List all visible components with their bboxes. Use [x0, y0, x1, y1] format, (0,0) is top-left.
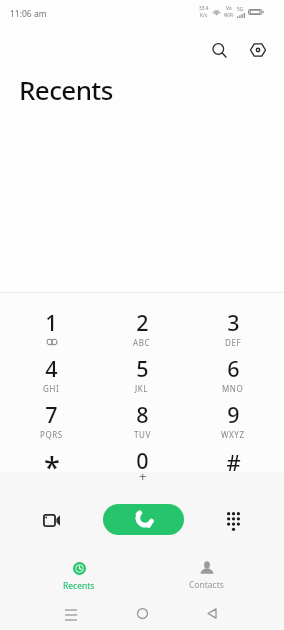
staticText: Recents [19, 72, 113, 107]
staticText: 4 [45, 354, 58, 383]
staticText: K/s [200, 12, 208, 18]
staticText: ABC [133, 337, 151, 348]
staticText: Recents [63, 580, 95, 592]
staticText: 0 [136, 446, 149, 475]
staticText: 5G [237, 6, 244, 13]
staticText: WXYZ [221, 429, 245, 440]
staticText: 11:06 am [10, 8, 47, 20]
staticText: * [44, 447, 60, 486]
button[interactable]: 4 [15, 354, 87, 400]
button[interactable]: 1 [15, 308, 87, 354]
staticText: Contacts [189, 579, 224, 591]
staticText: 7 [45, 400, 58, 429]
staticText: JKL [135, 383, 149, 394]
staticText: 5 [136, 354, 149, 383]
staticText: 1 [45, 308, 58, 337]
staticText: PQRS [40, 429, 63, 440]
button[interactable]: Call [103, 504, 184, 535]
button[interactable]: Recents [47, 562, 111, 596]
button[interactable]: Video call [33, 502, 69, 538]
button[interactable]: Contacts [174, 561, 238, 595]
staticText: TUV [134, 429, 151, 440]
staticText: 9 [227, 400, 240, 429]
staticText: 6 [227, 354, 240, 383]
staticText: GHI [43, 383, 60, 394]
button[interactable]: * [15, 446, 87, 492]
staticText: Vo [226, 5, 232, 12]
button[interactable]: 0 [106, 446, 178, 492]
staticText: 8 [136, 400, 149, 429]
button[interactable]: Recent apps [57, 600, 85, 628]
staticText: 33.4 [199, 5, 209, 12]
staticText: DEF [225, 337, 242, 348]
button[interactable]: Dialpad [215, 502, 251, 538]
staticText: WiFi [224, 12, 234, 18]
button[interactable]: 8 [106, 400, 178, 446]
button[interactable]: 7 [15, 400, 87, 446]
staticText: 2 [136, 308, 149, 337]
button[interactable]: Back [198, 599, 226, 627]
button[interactable]: 5 [106, 354, 178, 400]
button[interactable]: # [197, 446, 269, 492]
button[interactable]: Settings [243, 35, 273, 65]
staticText: + [139, 467, 147, 484]
staticText: 3 [227, 308, 240, 337]
button[interactable]: 6 [197, 354, 269, 400]
button[interactable]: 9 [197, 400, 269, 446]
staticText: MNO [222, 383, 244, 394]
button[interactable]: Home [128, 599, 156, 627]
button[interactable]: 2 [106, 308, 178, 354]
staticText: # [226, 447, 241, 477]
button[interactable]: 3 [197, 308, 269, 354]
button[interactable]: Search [204, 35, 234, 65]
